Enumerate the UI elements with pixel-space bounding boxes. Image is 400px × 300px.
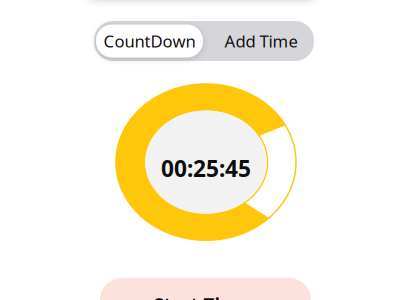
button[interactable]: Start Timer — [100, 278, 311, 300]
staticText: Add Time — [224, 30, 297, 52]
staticText: Start Timer — [153, 292, 257, 300]
button[interactable]: CountDown — [96, 24, 203, 57]
button[interactable]: Add Time — [207, 23, 315, 59]
staticText: CountDown — [103, 30, 195, 52]
staticText: 00:25:45 — [161, 153, 251, 184]
